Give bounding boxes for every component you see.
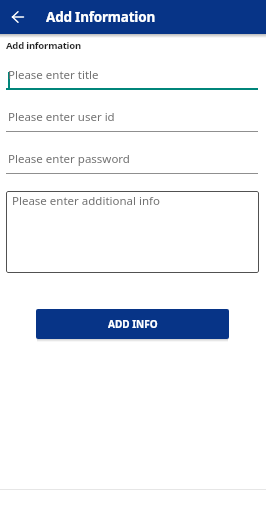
staticText: Please enter user id [8,109,115,125]
button[interactable]: ADD INFO [36,309,229,339]
button[interactable] [6,5,30,29]
button[interactable]: Please enter title [6,60,258,90]
staticText: ADD INFO [108,317,158,331]
staticText: Please enter title [8,67,99,83]
button[interactable]: Please enter additional info [6,191,259,273]
staticText: Add information [6,39,81,52]
staticText: Please enter password [8,151,130,167]
staticText: Add Information [46,8,155,26]
button[interactable]: Please enter password [6,146,258,174]
staticText: Please enter additional info [12,193,160,209]
button[interactable]: Please enter user id [6,104,258,132]
